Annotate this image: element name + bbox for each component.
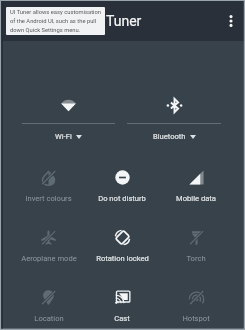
button[interactable]: Invert colours — [12, 149, 85, 209]
button[interactable]: Hotspot — [159, 269, 233, 329]
staticText: UI Tuner allows easy customisation of th… — [10, 9, 102, 33]
button[interactable]: Torch — [159, 209, 233, 269]
staticText: Hotspot — [182, 314, 210, 323]
button[interactable]: Bluetooth — [121, 41, 227, 149]
staticText: Torch — [186, 254, 206, 263]
button[interactable]: Wi-Fi — [16, 41, 121, 149]
staticText: Bluetooth — [153, 132, 186, 141]
staticText: Cast — [114, 314, 130, 323]
staticText: Mobile data — [176, 194, 216, 203]
staticText: System UI Tuner — [40, 13, 142, 29]
staticText: Aeroplane mode — [21, 254, 77, 263]
button[interactable]: Location — [12, 269, 85, 329]
button[interactable]: Rotation locked — [85, 209, 159, 269]
staticText: Invert colours — [25, 194, 72, 203]
staticText: Wi-Fi — [55, 132, 72, 141]
button[interactable]: UI Tuner allows easy customisation of th… — [6, 7, 105, 35]
button[interactable]: Mobile data — [159, 149, 233, 209]
button[interactable]: Aeroplane mode — [12, 209, 85, 269]
button[interactable]: Cast — [85, 269, 159, 329]
button[interactable]: More options — [217, 0, 245, 41]
staticText: Rotation locked — [96, 254, 149, 263]
button[interactable]: Do not disturb — [85, 149, 159, 209]
staticText: Location — [34, 314, 64, 323]
staticText: Do not disturb — [98, 194, 146, 203]
